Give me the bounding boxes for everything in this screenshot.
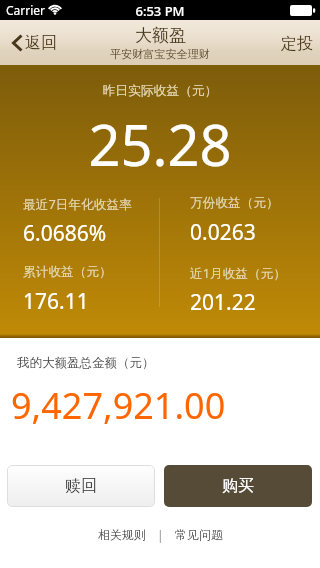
staticText: 9,427,921.00 bbox=[11, 381, 226, 430]
button[interactable]: 相关规则 bbox=[94, 524, 150, 545]
staticText: 我的大额盈总金额（元） bbox=[17, 355, 155, 371]
button[interactable]: 购买 bbox=[164, 465, 312, 507]
staticText: 25.28 bbox=[0, 106, 320, 182]
staticText: 201.22 bbox=[190, 288, 256, 317]
staticText: | bbox=[157, 527, 164, 543]
staticText: 相关规则 bbox=[98, 527, 146, 542]
button[interactable]: 赎回 bbox=[7, 465, 155, 507]
staticText: 最近7日年化收益率 bbox=[23, 195, 132, 212]
button[interactable]: 常见问题 bbox=[171, 524, 227, 545]
staticText: 返回 bbox=[25, 33, 57, 53]
staticText: 定投 bbox=[281, 34, 313, 54]
staticText: 6.0686% bbox=[23, 219, 107, 248]
staticText: 购买 bbox=[222, 476, 254, 496]
staticText: 常见问题 bbox=[175, 527, 223, 542]
staticText: 176.11 bbox=[23, 287, 89, 316]
button[interactable]: 返回 bbox=[0, 25, 67, 61]
staticText: 累计收益（元） bbox=[23, 264, 112, 280]
staticText: 大额盈 bbox=[135, 25, 186, 46]
staticText: 昨日实际收益（元） bbox=[0, 83, 320, 99]
button[interactable]: 定投 bbox=[269, 25, 320, 61]
staticText: 万份收益（元） bbox=[190, 195, 279, 211]
staticText: 0.0263 bbox=[190, 218, 256, 247]
staticText: 近1月收益（元） bbox=[190, 264, 287, 281]
staticText: 平安财富宝安全理财 bbox=[110, 47, 210, 61]
staticText: Carrier bbox=[6, 2, 46, 18]
staticText: 6:53 PM bbox=[0, 2, 320, 20]
staticText: 赎回 bbox=[65, 476, 97, 496]
